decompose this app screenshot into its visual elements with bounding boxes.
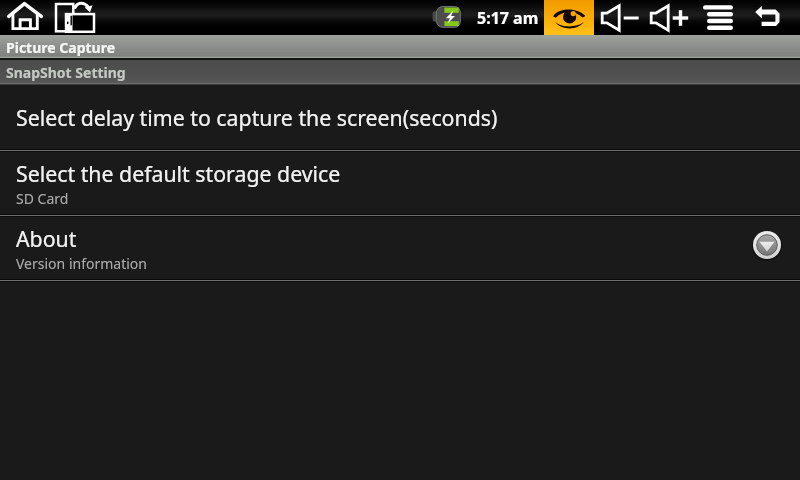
button[interactable]: Menu [698, 0, 742, 35]
staticText: About [16, 224, 77, 253]
button[interactable]: Home [4, 0, 46, 35]
staticText: Select delay time to capture the screen(… [16, 103, 498, 132]
staticText: 5:17 am [477, 7, 539, 29]
staticText: Version information [16, 254, 147, 273]
button[interactable]: Select the default storage device [0, 152, 800, 217]
button[interactable]: Volume up [645, 0, 692, 35]
button[interactable]: Select delay time to capture the screen(… [0, 85, 800, 152]
staticText: SnapShot Setting [6, 63, 126, 82]
staticText: SD Card [16, 189, 69, 208]
staticText: Select the default storage device [16, 159, 341, 188]
staticText: Picture Capture [6, 38, 115, 57]
button[interactable]: Volume down [596, 0, 640, 35]
button[interactable]: Screen capture [544, 0, 594, 35]
button[interactable]: Rotate screen [50, 0, 98, 35]
button[interactable]: About [0, 217, 800, 282]
button[interactable]: Back [748, 0, 792, 35]
